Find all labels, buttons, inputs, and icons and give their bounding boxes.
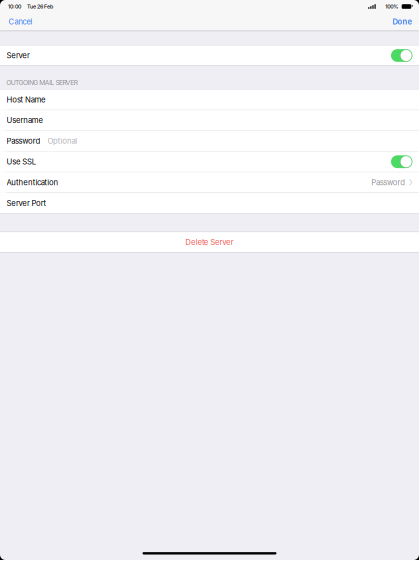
- staticText: Host Name: [6, 95, 46, 104]
- staticText: Optional: [47, 136, 77, 146]
- button[interactable]: Use SSL: [0, 152, 419, 172]
- staticText: Authentication: [6, 178, 59, 187]
- staticText: Password: [6, 136, 40, 146]
- staticText: Password: [371, 178, 405, 187]
- button[interactable]: Username: [0, 110, 419, 130]
- button[interactable]: Authentication: [0, 172, 419, 192]
- staticText: 10:00: [8, 3, 21, 10]
- staticText: Server: [6, 51, 30, 60]
- button[interactable]: Server: [0, 45, 419, 65]
- button[interactable]: Cancel: [0, 13, 42, 30]
- button[interactable]: Password: [0, 131, 419, 151]
- button[interactable]: Host Name: [0, 89, 419, 110]
- button[interactable]: Done: [382, 13, 419, 30]
- staticText: Done: [392, 17, 411, 26]
- staticText: 100%: [385, 3, 398, 10]
- staticText: OUTGOING MAIL SERVER: [6, 78, 78, 86]
- button[interactable]: Server Port: [0, 193, 419, 213]
- staticText: Tue 26 Feb: [27, 3, 53, 10]
- button[interactable]: Delete Server: [0, 232, 419, 252]
- staticText: Server Port: [6, 198, 46, 208]
- staticText: Delete Server: [185, 237, 234, 247]
- staticText: Use SSL: [6, 157, 36, 166]
- staticText: Username: [6, 116, 43, 125]
- staticText: Cancel: [8, 17, 32, 26]
